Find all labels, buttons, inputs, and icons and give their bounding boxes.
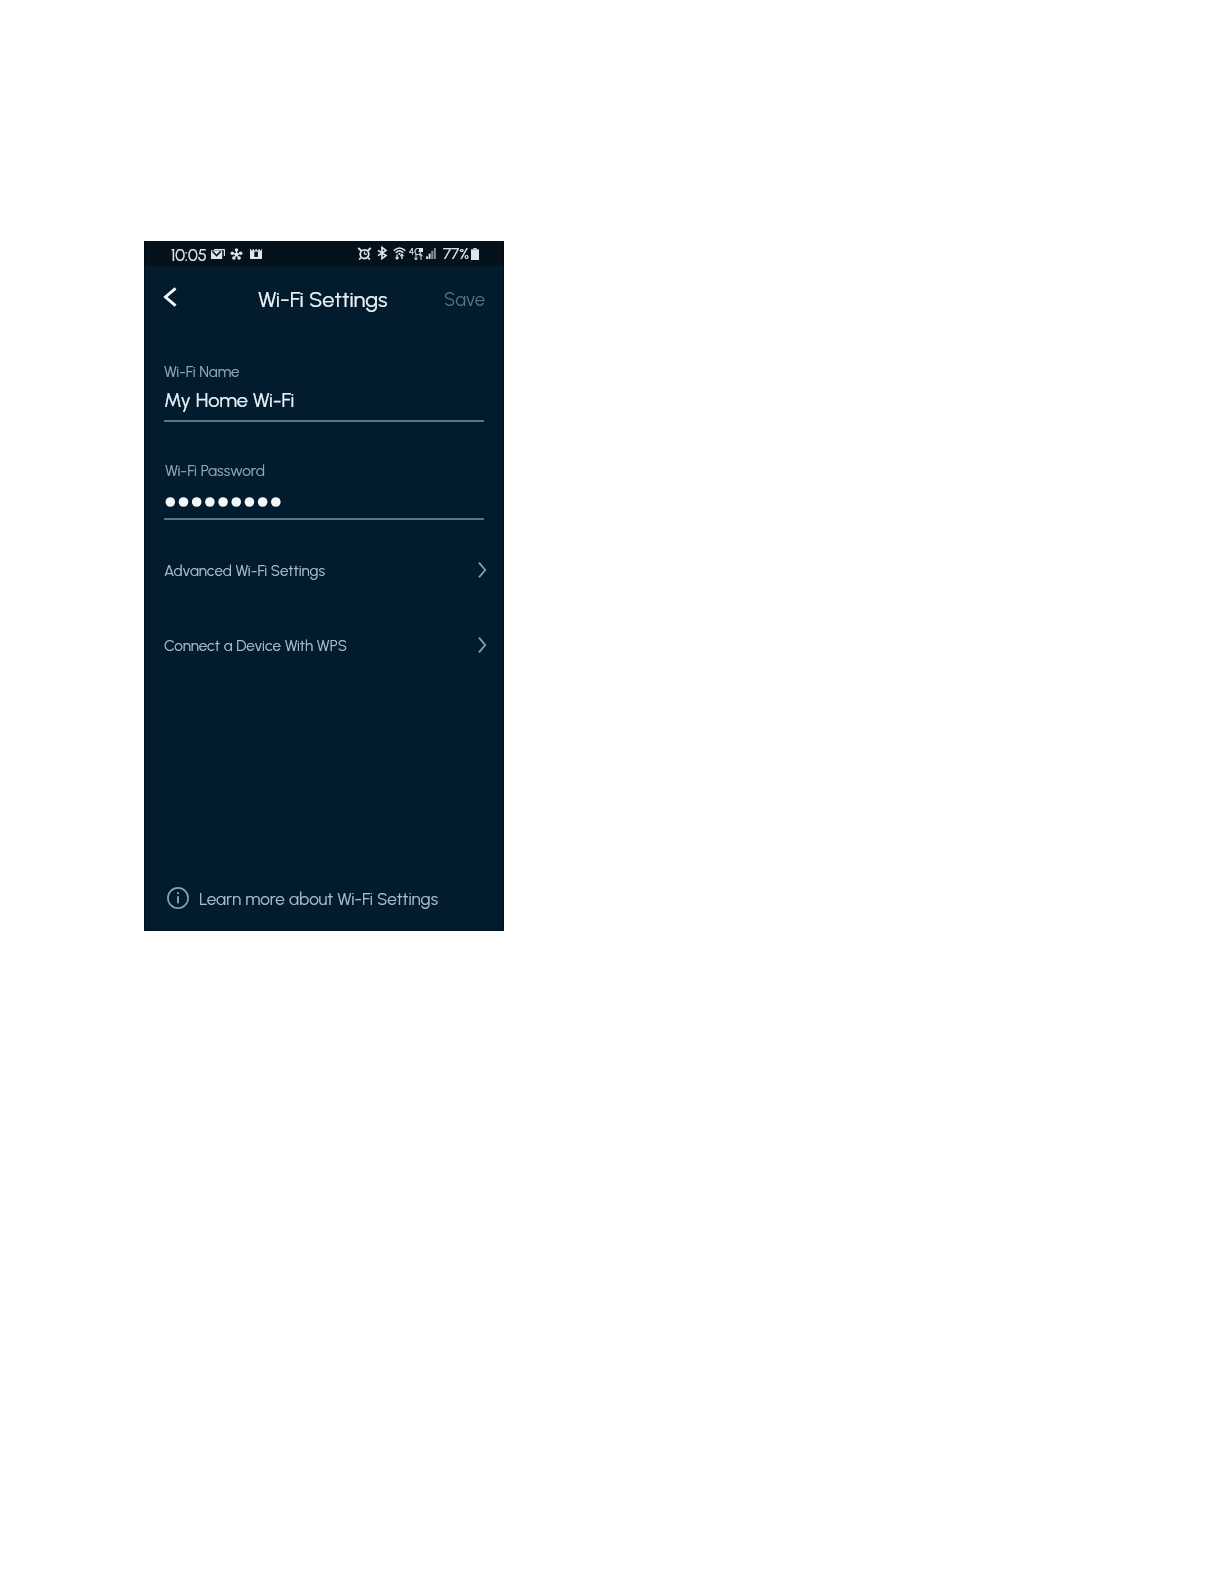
staticText: 10:05	[171, 245, 207, 265]
staticText: Connect a Device With WPS	[164, 637, 348, 655]
staticText: Wi-Fi Settings	[258, 286, 388, 312]
button[interactable]: Save	[436, 277, 490, 317]
staticText: Advanced Wi-Fi Settings	[164, 562, 325, 580]
button[interactable]: Advanced Wi-Fi Settings	[144, 547, 504, 593]
staticText: 4G	[409, 246, 422, 257]
staticText: My Home Wi-Fi	[164, 388, 295, 412]
staticText: Wi-Fi Password	[165, 461, 266, 479]
staticText: Learn more about Wi-Fi Settings	[199, 889, 438, 910]
button[interactable]: Connect a Device With WPS	[144, 622, 504, 668]
button[interactable]: Back	[146, 273, 194, 321]
button[interactable]: Learn more about Wi-Fi Settings	[144, 882, 504, 916]
staticText: Wi-Fi Name	[164, 363, 240, 381]
staticText: 77%	[443, 245, 469, 263]
button[interactable]: Wi-Fi Password	[164, 459, 484, 521]
button[interactable]: Wi-Fi Name	[164, 360, 484, 423]
staticText: Save	[444, 288, 486, 310]
